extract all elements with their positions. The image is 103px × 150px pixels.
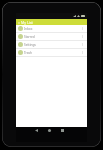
button[interactable]: Recents xyxy=(56,127,69,134)
button[interactable]: Home xyxy=(43,127,56,134)
staticText: My List xyxy=(21,20,33,25)
button[interactable]: Inbox xyxy=(16,25,87,32)
staticText: Trash xyxy=(24,51,32,55)
staticText: Settings xyxy=(24,43,36,47)
button[interactable]: Starred xyxy=(16,33,87,40)
staticText: Inbox xyxy=(24,27,33,31)
button[interactable]: Trash xyxy=(16,49,87,56)
staticText: Starred xyxy=(24,35,35,39)
button[interactable]: Settings xyxy=(16,41,87,48)
button[interactable]: Back xyxy=(30,127,43,134)
button[interactable]: Navigation menu xyxy=(17,21,20,24)
